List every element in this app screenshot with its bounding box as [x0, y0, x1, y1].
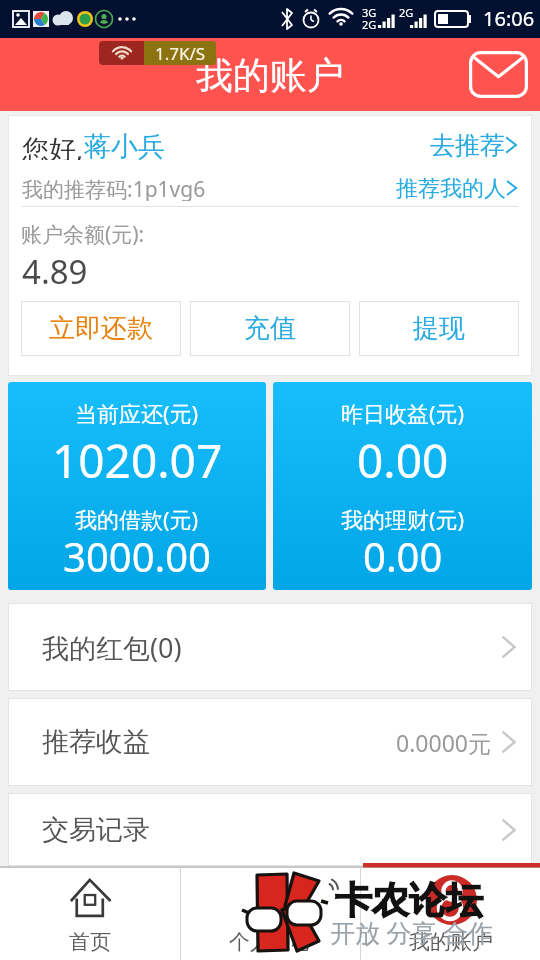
staticText: 当前应还(元)	[75, 398, 199, 428]
button[interactable]: 我的账户	[361, 868, 540, 960]
button[interactable]: 当前应还(元)	[8, 382, 266, 590]
staticText: 去推荐	[430, 130, 505, 160]
staticText: 充值	[244, 312, 296, 345]
button[interactable]: 推荐我的人	[396, 175, 518, 201]
staticText: 我的账户	[196, 52, 344, 99]
staticText: 立即还款	[49, 312, 153, 345]
button[interactable]: 昨日收益(元)	[273, 382, 532, 590]
staticText: 卡农论坛	[335, 877, 483, 924]
button[interactable]: 充值	[190, 301, 350, 356]
button[interactable]: 提现	[359, 301, 519, 356]
staticText: 蒋小兵	[84, 130, 165, 160]
staticText: 个人中心	[229, 929, 313, 955]
button[interactable]: 推荐收益	[8, 698, 532, 786]
staticText: 提现	[413, 312, 465, 345]
staticText: 开放 分享 合作	[330, 915, 494, 949]
button[interactable]: 我的红包(0)	[8, 603, 532, 691]
staticText: 0.00	[357, 429, 449, 492]
button[interactable]: 立即还款	[21, 301, 181, 356]
staticText: 交易记录	[42, 813, 501, 847]
staticText: 推荐收益	[42, 725, 396, 759]
staticText: 昨日收益(元)	[341, 398, 465, 428]
button[interactable]: Messages	[465, 41, 532, 108]
staticText: 0.0000元	[396, 727, 491, 758]
staticText: 首页	[69, 929, 111, 955]
staticText: 我的推荐码:1p1vg6	[22, 175, 396, 201]
button[interactable]: 去推荐	[430, 130, 518, 160]
staticText: 1020.07	[52, 429, 223, 492]
staticText: 推荐我的人	[396, 175, 506, 201]
button[interactable]: 交易记录	[8, 793, 532, 866]
staticText: 3000.00	[63, 529, 211, 583]
staticText: 我的红包(0)	[42, 629, 501, 666]
staticText: 1.7K/S	[155, 42, 206, 65]
staticText: 账户余额(元):	[21, 220, 145, 249]
button[interactable]: 首页	[0, 868, 180, 960]
staticText: 4.89	[22, 249, 88, 294]
staticText: 2G	[399, 5, 414, 20]
button[interactable]: 个人中心	[181, 868, 360, 960]
staticText: 16:06	[483, 5, 535, 32]
staticText: 您好,	[22, 130, 84, 160]
staticText: 我的理财(元)	[341, 504, 465, 534]
staticText: 3G	[362, 5, 377, 20]
staticText: 我的借款(元)	[75, 504, 199, 534]
staticText: 我的账户	[409, 929, 493, 955]
staticText: 0.00	[363, 529, 443, 583]
staticText: 2G	[362, 17, 377, 32]
